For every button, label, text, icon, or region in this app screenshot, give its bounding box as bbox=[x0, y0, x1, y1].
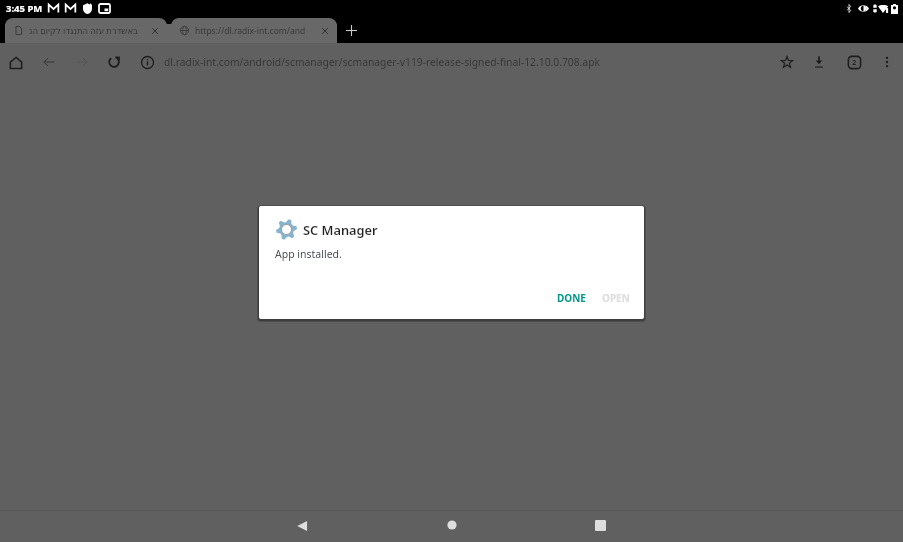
button[interactable]: Back bbox=[278, 510, 326, 542]
staticText: https://dl.radix-int.com/and bbox=[195, 25, 315, 37]
button[interactable]: Recent apps bbox=[576, 509, 624, 541]
button[interactable]: Switch or close tabs, 2 open tabs bbox=[838, 46, 870, 78]
button[interactable]: New tab bbox=[337, 17, 365, 43]
button[interactable]: DONE bbox=[548, 286, 594, 310]
staticText: DONE bbox=[557, 291, 586, 305]
button[interactable]: Home bbox=[428, 509, 476, 541]
button[interactable]: OPEN bbox=[593, 286, 639, 310]
button[interactable]: Close tab bbox=[318, 24, 332, 38]
button[interactable]: dl.radix-int.com/android/scmanager/scman… bbox=[164, 43, 764, 80]
staticText: dl.radix-int.com/android/scmanager/scman… bbox=[164, 55, 600, 69]
button[interactable]: ‏באשדרת עזה התנגדו לקיום הנ bbox=[5, 18, 167, 43]
staticText: 2 bbox=[852, 57, 857, 67]
staticText: App installed. bbox=[275, 247, 342, 261]
staticText: SC Manager bbox=[303, 221, 378, 238]
button[interactable]: Bookmark bbox=[771, 46, 803, 78]
button[interactable]: More options bbox=[871, 46, 903, 78]
staticText: 3:45 PM bbox=[6, 2, 43, 15]
button[interactable]: Downloads bbox=[803, 46, 835, 78]
button[interactable]: Close tab bbox=[148, 24, 162, 38]
button[interactable]: https://dl.radix-int.com/and bbox=[171, 18, 337, 43]
button[interactable]: Site information bbox=[131, 46, 163, 78]
button[interactable]: Home bbox=[0, 47, 32, 79]
button[interactable]: Reload bbox=[98, 46, 130, 78]
button[interactable]: Back bbox=[33, 46, 65, 78]
staticText: OPEN bbox=[602, 291, 630, 305]
staticText: ‏באשדרת עזה התנגדו לקיום הנ bbox=[29, 25, 145, 37]
